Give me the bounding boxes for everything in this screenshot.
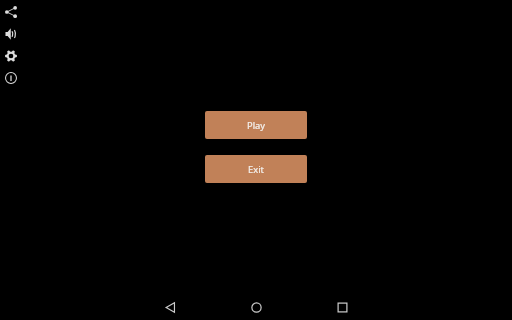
button[interactable]: Info	[0, 67, 22, 89]
button[interactable]: Sound	[0, 23, 22, 45]
staticText: Exit	[248, 163, 264, 176]
button[interactable]: Play	[205, 111, 307, 139]
button[interactable]: Settings	[0, 45, 22, 67]
button[interactable]: Recents	[322, 287, 362, 320]
button[interactable]: Back	[150, 287, 190, 320]
staticText: Play	[247, 119, 265, 132]
button[interactable]: Share	[0, 1, 22, 23]
button[interactable]: Exit	[205, 155, 307, 183]
button[interactable]: Home	[236, 287, 276, 320]
